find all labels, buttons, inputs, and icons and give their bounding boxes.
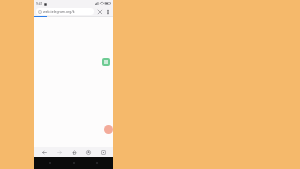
button[interactable]: Tabs: [98, 147, 108, 157]
button[interactable]: Telegram action: [102, 58, 110, 66]
button[interactable]: More options: [104, 8, 111, 15]
staticText: web.telegram.org/k: [43, 9, 75, 14]
button[interactable]: Stop loading: [96, 8, 103, 15]
button[interactable]: System home: [67, 160, 81, 166]
button[interactable]: System recents: [90, 160, 104, 166]
button[interactable]: Home: [69, 147, 79, 157]
button[interactable]: System back: [43, 160, 57, 166]
button[interactable]: web.telegram.org/k: [36, 8, 94, 15]
button[interactable]: Back: [39, 147, 49, 157]
button[interactable]: Forward: [54, 147, 64, 157]
staticText: 9:41: [36, 2, 43, 6]
button[interactable]: Account: [83, 147, 93, 157]
